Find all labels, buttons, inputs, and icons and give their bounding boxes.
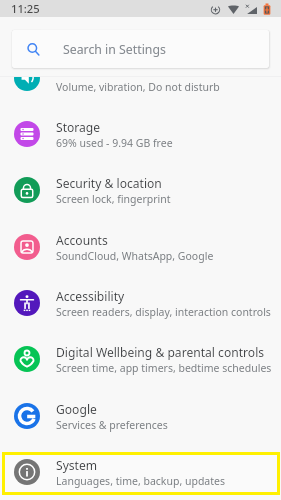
staticText: Accounts — [56, 232, 108, 248]
staticText: Search in Settings — [63, 41, 166, 58]
staticText: Languages, time, backup, updates — [56, 474, 225, 488]
staticText: 11:25 — [11, 1, 40, 16]
button[interactable]: System — [0, 444, 281, 500]
button[interactable]: Digital Wellbeing & parental controls — [0, 331, 281, 387]
button[interactable]: Accounts — [0, 219, 281, 275]
staticText: Security & location — [56, 175, 162, 191]
staticText: SoundCloud, WhatsApp, Google — [56, 249, 214, 263]
button[interactable]: Security & location — [0, 162, 281, 218]
staticText: System — [56, 457, 98, 473]
staticText: Screen time, app timers, bedtime schedul… — [56, 361, 272, 375]
staticText: Screen lock, fingerprint — [56, 192, 171, 206]
button[interactable]: Sound — [0, 50, 281, 106]
staticText: Google — [56, 401, 97, 417]
button[interactable]: System — [0, 444, 281, 500]
staticText: Services & preferences — [56, 418, 168, 432]
staticText: Volume, vibration, Do not disturb — [56, 80, 220, 94]
button[interactable]: Google — [0, 388, 281, 444]
staticText: Screen readers, display, interaction con… — [56, 305, 271, 319]
button[interactable]: Storage — [0, 106, 281, 162]
button[interactable]: Search in Settings — [12, 30, 269, 68]
staticText: Languages, time, backup, updates — [56, 474, 225, 488]
staticText: Sound — [56, 63, 93, 79]
staticText: Accessibility — [56, 288, 125, 304]
staticText: Digital Wellbeing & parental controls — [56, 344, 265, 360]
staticText: System — [56, 457, 98, 473]
button[interactable]: Accessibility — [0, 275, 281, 331]
staticText: 69% used - 9.94 GB free — [56, 136, 173, 150]
staticText: Storage — [56, 119, 101, 135]
